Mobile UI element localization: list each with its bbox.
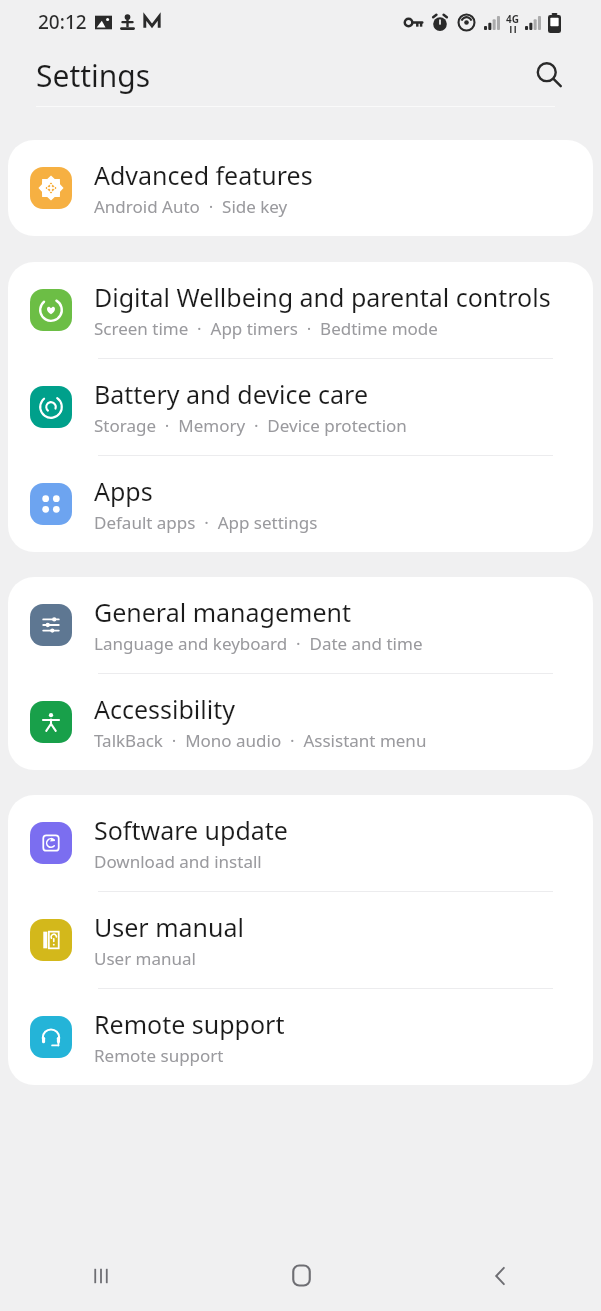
staticText: Accessibility (94, 692, 235, 726)
button[interactable]: Advanced features (8, 140, 593, 236)
button[interactable]: Remote support (8, 989, 593, 1085)
staticText: Battery and device care (94, 377, 369, 411)
button[interactable]: Apps (8, 456, 593, 552)
staticText: Remote support (94, 1007, 285, 1041)
staticText: Storage · Memory · Device protection (94, 414, 407, 437)
staticText: 20:12 (38, 9, 87, 35)
staticText: Download and install (94, 850, 262, 873)
button[interactable]: Software update (8, 795, 593, 892)
staticText: Digital Wellbeing and parental controls (94, 280, 551, 314)
button[interactable]: Back (401, 1240, 601, 1311)
staticText: User manual (94, 947, 196, 970)
button[interactable]: General management (8, 577, 593, 674)
button[interactable]: Recent apps (0, 1240, 201, 1311)
button[interactable]: Home (201, 1240, 401, 1311)
button[interactable]: Accessibility (8, 674, 593, 770)
button[interactable]: Digital Wellbeing and parental controls (8, 262, 593, 359)
staticText: Advanced features (94, 158, 313, 192)
button[interactable]: Search (527, 53, 571, 97)
staticText: Language and keyboard · Date and time (94, 632, 423, 655)
staticText: TalkBack · Mono audio · Assistant menu (94, 729, 427, 752)
staticText: 4G (506, 12, 519, 26)
button[interactable]: User manual (8, 892, 593, 989)
staticText: Settings (36, 55, 151, 96)
staticText: Android Auto · Side key (94, 195, 288, 218)
staticText: Apps (94, 474, 153, 508)
staticText: Remote support (94, 1044, 224, 1067)
staticText: User manual (94, 910, 244, 944)
staticText: Software update (94, 813, 288, 847)
button[interactable]: Battery and device care (8, 359, 593, 456)
staticText: Screen time · App timers · Bedtime mode (94, 317, 438, 340)
staticText: General management (94, 595, 351, 629)
staticText: Default apps · App settings (94, 511, 318, 534)
